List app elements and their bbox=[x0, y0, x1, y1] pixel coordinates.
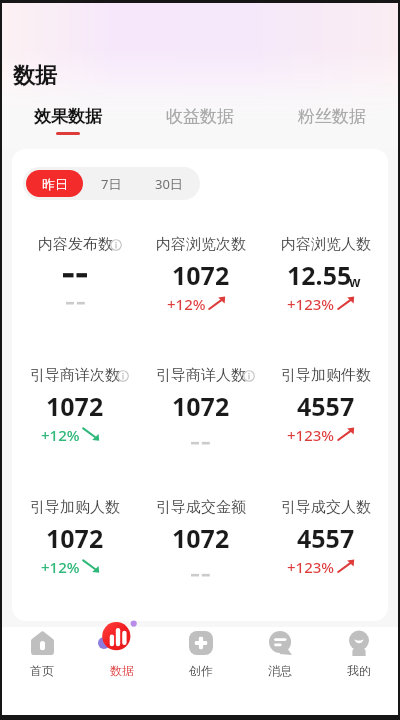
button[interactable]: 消息 bbox=[240, 627, 319, 678]
button[interactable]: 引导成交人数 bbox=[263, 498, 388, 577]
button[interactable]: 引导加购人数 bbox=[12, 498, 138, 577]
staticText: 消息 bbox=[268, 663, 292, 678]
button[interactable]: 引导商详人数 bbox=[138, 366, 263, 446]
button[interactable]: 效果数据 bbox=[2, 106, 134, 135]
staticText: 收益数据 bbox=[166, 106, 234, 127]
button[interactable]: 首页 bbox=[2, 627, 82, 678]
staticText: 12.55 bbox=[287, 258, 352, 292]
button[interactable]: 我的 bbox=[319, 627, 398, 678]
staticText: 1072 bbox=[46, 521, 104, 555]
staticText: 内容发布数 bbox=[38, 235, 113, 254]
staticText: 内容浏览次数 bbox=[156, 235, 246, 254]
staticText: 数据 bbox=[13, 62, 57, 90]
staticText: 4557 bbox=[297, 389, 355, 423]
staticText: +123% bbox=[287, 294, 335, 314]
staticText: 引导成交人数 bbox=[281, 498, 371, 517]
staticText: +123% bbox=[287, 425, 335, 445]
staticText: 数据 bbox=[110, 663, 134, 678]
button[interactable]: 7日 bbox=[83, 170, 140, 197]
staticText: 1072 bbox=[172, 521, 230, 555]
button[interactable]: 内容发布数 bbox=[12, 235, 138, 306]
staticText: 4557 bbox=[297, 521, 355, 555]
staticText: 创作 bbox=[189, 663, 213, 678]
button[interactable]: 引导商详次数 bbox=[12, 366, 138, 445]
staticText: 1072 bbox=[172, 389, 230, 423]
other: 消息 bbox=[269, 631, 292, 655]
staticText: 引导商详人数 bbox=[156, 366, 246, 385]
staticText: w bbox=[349, 273, 361, 291]
button[interactable]: 引导加购件数 bbox=[263, 366, 388, 445]
staticText: +123% bbox=[287, 557, 335, 577]
staticText: 1072 bbox=[172, 258, 230, 292]
staticText: 7日 bbox=[101, 175, 122, 193]
button[interactable]: 内容浏览次数 bbox=[138, 235, 263, 314]
staticText: 30日 bbox=[155, 175, 183, 193]
staticText: 引导加购人数 bbox=[30, 498, 120, 517]
staticText: 粉丝数据 bbox=[298, 106, 366, 127]
staticText: 效果数据 bbox=[34, 106, 102, 127]
button[interactable]: 数据 bbox=[82, 627, 161, 678]
staticText: 引导成交金额 bbox=[156, 498, 246, 517]
staticText: 内容浏览人数 bbox=[281, 235, 371, 254]
other: 首页 bbox=[31, 631, 54, 655]
staticText: 1072 bbox=[46, 389, 104, 423]
staticText: 引导商详次数 bbox=[30, 366, 120, 385]
button[interactable]: 昨日 bbox=[26, 170, 83, 197]
button[interactable]: 粉丝数据 bbox=[266, 106, 398, 135]
staticText: 引导加购件数 bbox=[281, 366, 371, 385]
button[interactable]: 内容浏览人数 bbox=[263, 235, 388, 314]
button[interactable]: 创作 bbox=[161, 627, 240, 678]
other: 创作 bbox=[189, 631, 213, 655]
staticText: +12% bbox=[41, 425, 80, 445]
staticText: +12% bbox=[167, 294, 206, 314]
staticText: 我的 bbox=[347, 663, 371, 678]
staticText: +12% bbox=[41, 557, 80, 577]
staticText: 昨日 bbox=[42, 176, 68, 192]
other: 我的 bbox=[349, 631, 369, 656]
staticText: 首页 bbox=[30, 663, 54, 678]
button[interactable]: 30日 bbox=[140, 170, 197, 197]
button[interactable]: 引导成交金额 bbox=[138, 498, 263, 578]
button[interactable]: 收益数据 bbox=[134, 106, 266, 135]
other: 数据 bbox=[98, 620, 138, 654]
